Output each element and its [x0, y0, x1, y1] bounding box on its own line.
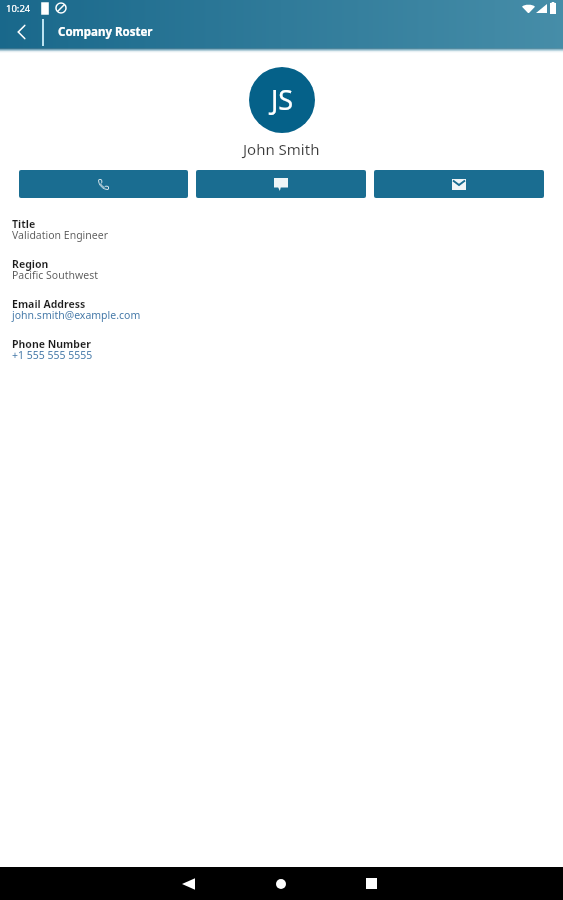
button[interactable]: Email — [374, 170, 544, 198]
staticText: Pacific Southwest — [12, 268, 98, 282]
staticText: 10:24 — [6, 2, 31, 15]
staticText: Company Roster — [58, 24, 153, 40]
staticText: John Smith — [243, 139, 320, 159]
staticText: Email Address — [12, 297, 86, 311]
staticText: Title — [12, 217, 36, 231]
button[interactable]: +1 555 555 5555 — [12, 348, 93, 362]
staticText: Region — [12, 257, 49, 271]
button[interactable]: Back — [172, 867, 205, 900]
button[interactable]: Recent apps — [355, 867, 388, 900]
button[interactable]: Call — [19, 170, 188, 198]
button[interactable]: Message — [196, 170, 366, 198]
button[interactable]: Back — [0, 16, 42, 48]
staticText: Phone Number — [12, 337, 91, 351]
staticText: JS — [271, 81, 294, 118]
button[interactable]: john.smith@example.com — [12, 308, 141, 322]
staticText: Validation Engineer — [12, 228, 108, 242]
button[interactable]: Home — [264, 867, 297, 900]
